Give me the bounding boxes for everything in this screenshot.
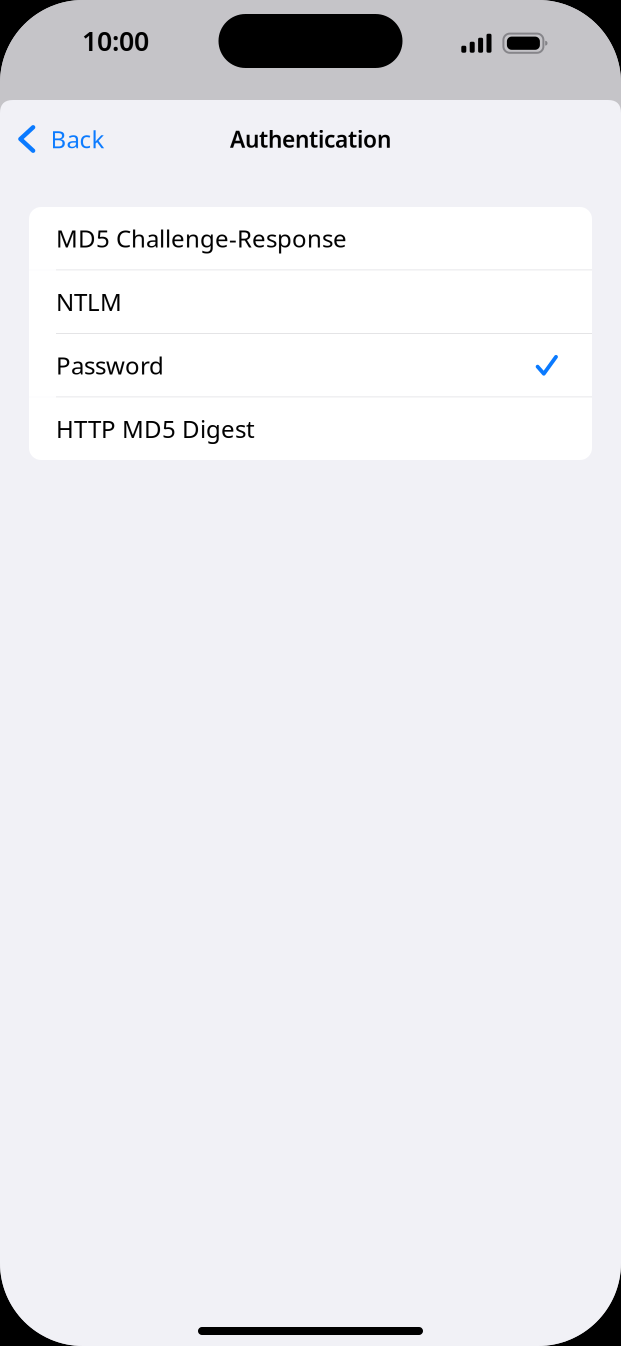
- staticText: Password: [56, 349, 164, 381]
- staticText: HTTP MD5 Digest: [56, 413, 255, 445]
- staticText: 10:00: [82, 23, 149, 58]
- staticText: NTLM: [56, 286, 122, 318]
- staticText: Authentication: [230, 124, 391, 154]
- staticText: Back: [50, 123, 104, 155]
- button[interactable]: NTLM: [29, 270, 592, 333]
- navigationBar: Authentication: [0, 100, 621, 178]
- button[interactable]: Back: [0, 115, 104, 163]
- button[interactable]: Password: [29, 334, 592, 396]
- button[interactable]: HTTP MD5 Digest: [29, 397, 592, 460]
- staticText: MD5 Challenge-Response: [56, 222, 347, 254]
- button[interactable]: MD5 Challenge-Response: [29, 207, 592, 269]
